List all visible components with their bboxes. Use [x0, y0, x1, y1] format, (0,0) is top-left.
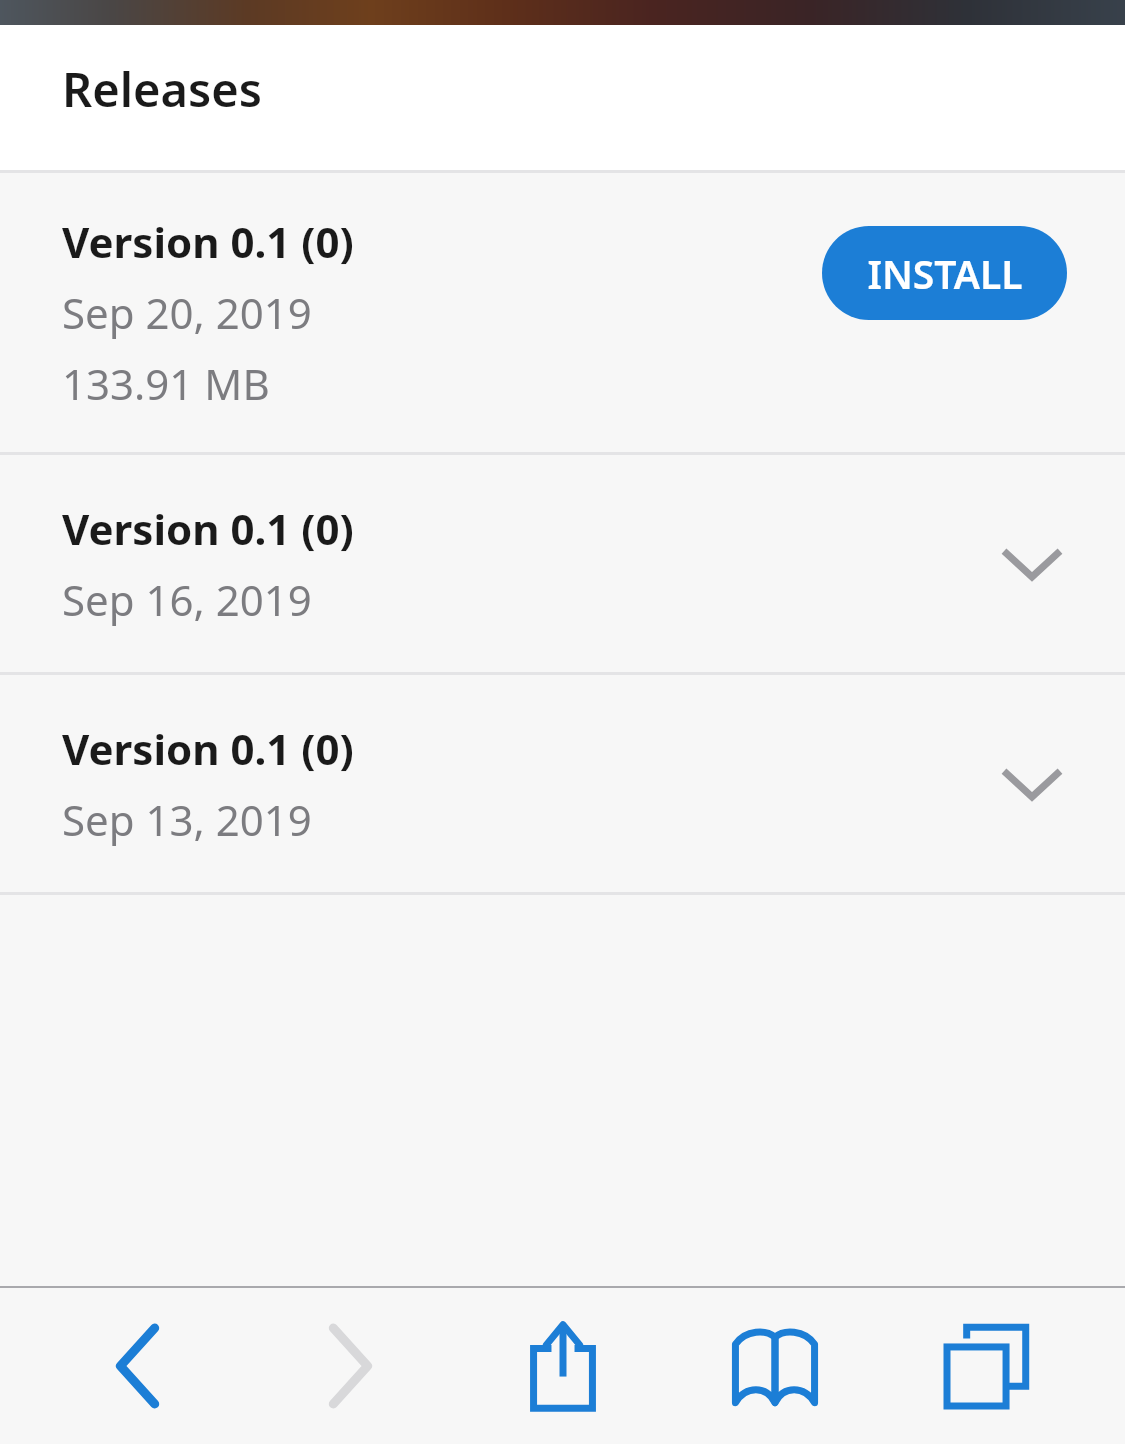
staticText: INSTALL	[867, 247, 1023, 300]
button[interactable]: Tabs	[913, 1291, 1063, 1441]
staticText: Sep 16, 2019	[62, 571, 312, 628]
button[interactable]: INSTALL	[822, 226, 1067, 320]
staticText: Version 0.1 (0)	[62, 213, 354, 270]
button[interactable]: Bookmarks	[700, 1291, 850, 1441]
button[interactable]: Expand	[977, 509, 1087, 619]
staticText: Releases	[62, 57, 262, 121]
staticText: Sep 20, 2019	[62, 284, 312, 341]
staticText: Sep 13, 2019	[62, 791, 312, 848]
button[interactable]: Share	[488, 1291, 638, 1441]
button[interactable]: Version 0.1 (0)	[0, 173, 1125, 452]
staticText: Version 0.1 (0)	[62, 720, 354, 777]
staticText: 133.91 MB	[62, 355, 270, 412]
staticText: Version 0.1 (0)	[62, 500, 354, 557]
button[interactable]: Version 0.1 (0)	[0, 455, 1125, 672]
button[interactable]: Version 0.1 (0)	[0, 675, 1125, 892]
button[interactable]: Forward	[275, 1291, 425, 1441]
button[interactable]: Back	[63, 1291, 213, 1441]
button[interactable]: Expand	[977, 729, 1087, 839]
